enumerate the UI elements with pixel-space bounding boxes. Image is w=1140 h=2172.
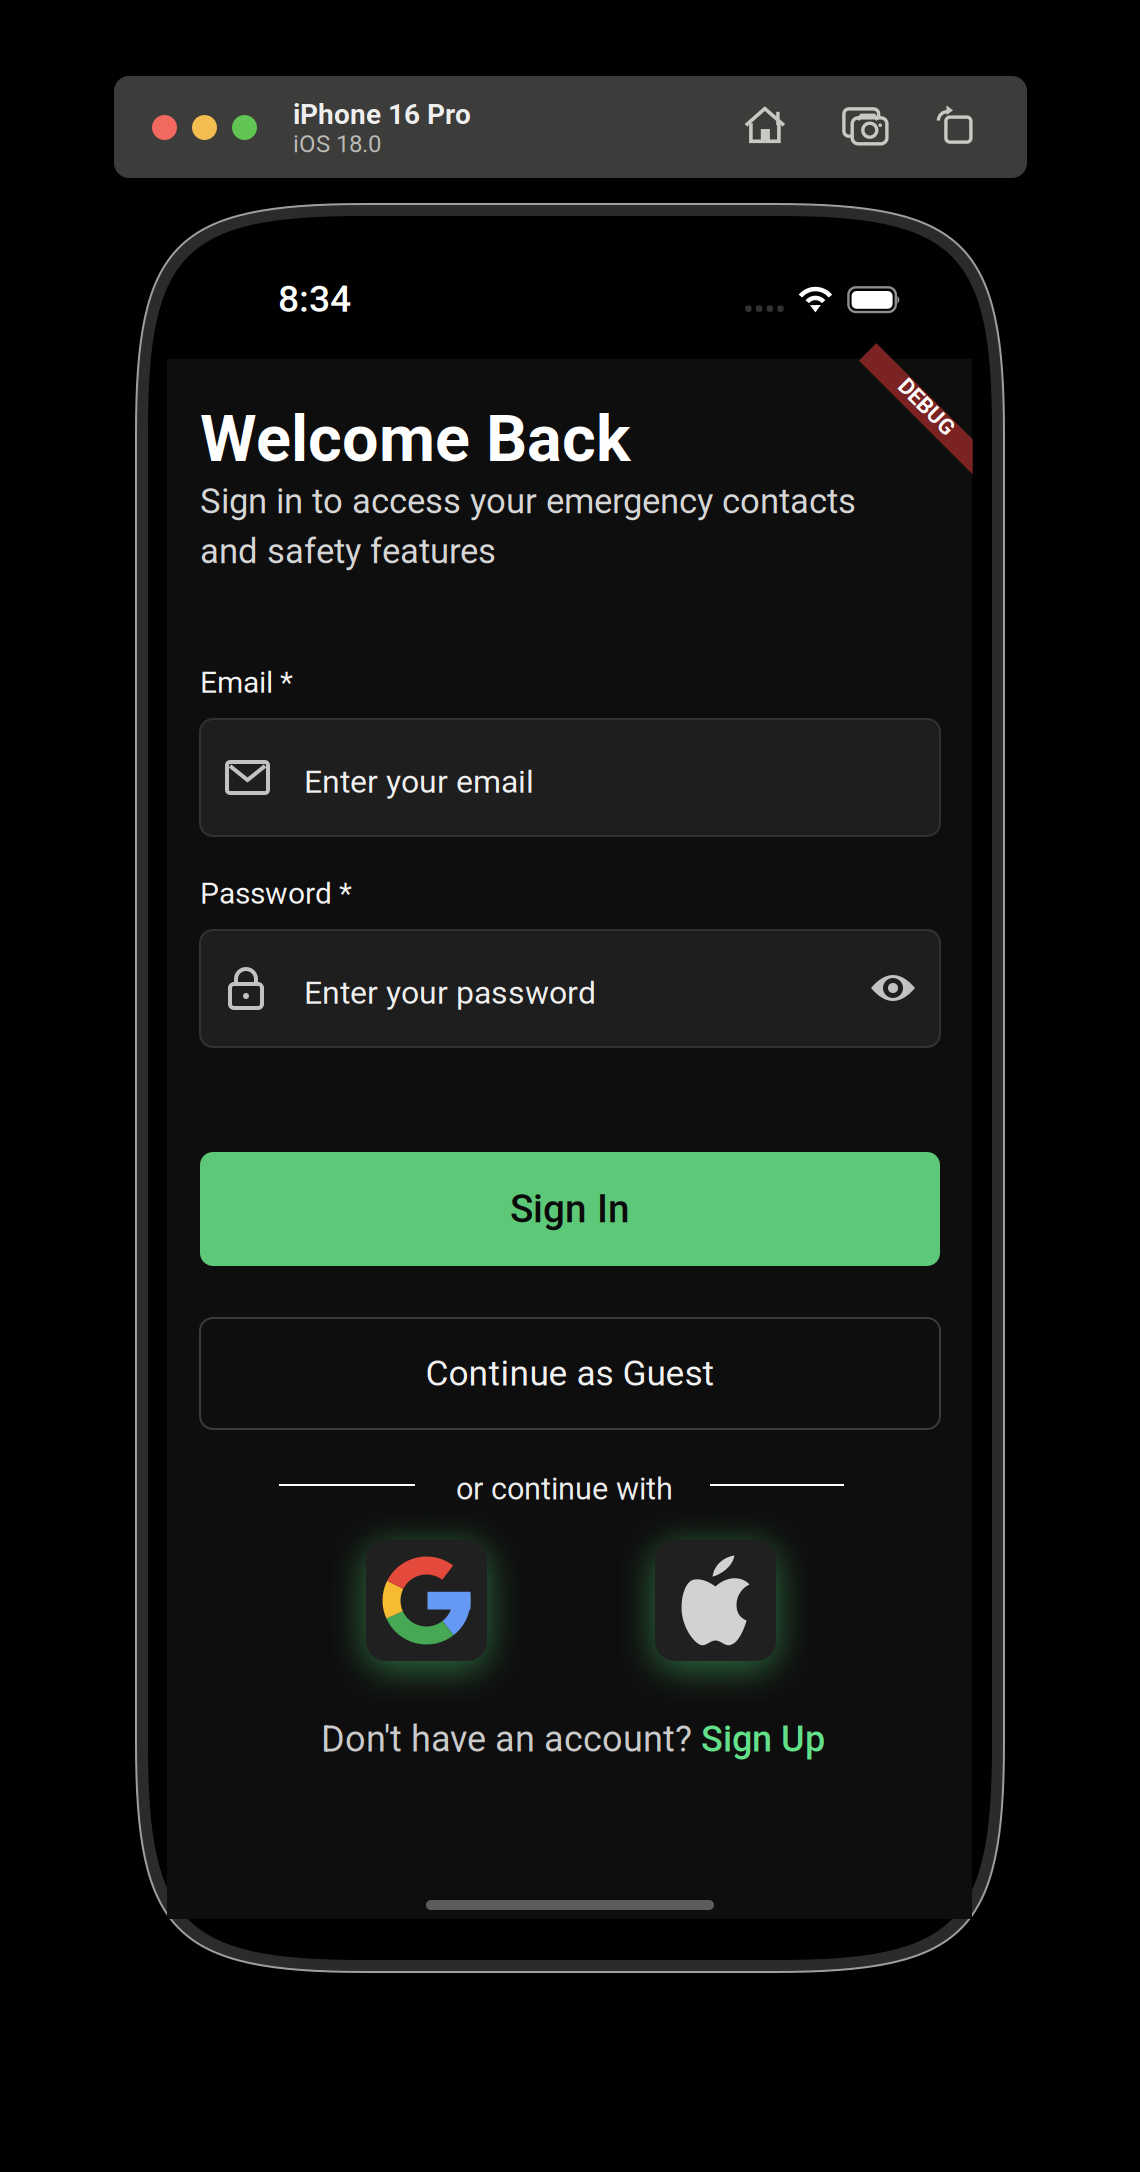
staticText: iOS 18.0 [293, 130, 381, 158]
button[interactable]: Show password [860, 955, 926, 1021]
staticText: Don't have an account? [321, 1718, 701, 1760]
staticText: Continue as Guest [425, 1353, 714, 1394]
button[interactable]: Continue with Apple [655, 1540, 776, 1661]
button[interactable]: Screenshot [844, 109, 888, 145]
button[interactable]: Continue as Guest [200, 1318, 940, 1429]
staticText: Password * [200, 876, 352, 911]
staticText: Email * [200, 665, 293, 700]
staticText: Enter your email [304, 763, 534, 800]
button[interactable]: Sign In [200, 1152, 940, 1266]
staticText: Sign Up [701, 1718, 825, 1760]
staticText: Sign In [510, 1186, 630, 1232]
staticText: DEBUG [891, 394, 961, 420]
staticText: and safety features [200, 531, 496, 572]
staticText: 8:34 [278, 277, 351, 321]
button[interactable]: Continue with Google [366, 1540, 487, 1661]
button[interactable]: Record screen [938, 105, 972, 143]
staticText: iPhone 16 Pro [293, 98, 471, 131]
button[interactable]: Don't have an account? [321, 1718, 825, 1760]
staticText: Enter your password [304, 974, 596, 1011]
staticText: or continue with [456, 1471, 673, 1507]
button[interactable]: Home [745, 107, 785, 144]
staticText: Welcome Back [200, 401, 631, 477]
staticText: Sign in to access your emergency contact… [200, 481, 856, 522]
